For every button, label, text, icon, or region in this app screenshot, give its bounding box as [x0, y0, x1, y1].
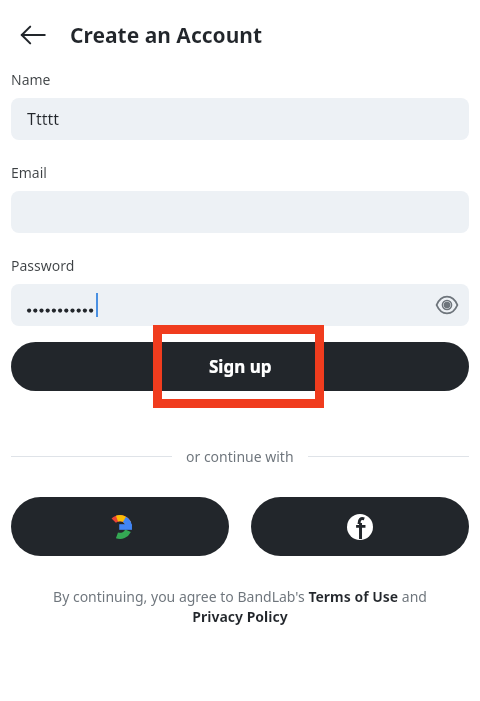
staticText: or continue with [186, 447, 294, 466]
staticText: Email [11, 163, 47, 182]
staticText: Sign up [209, 355, 272, 378]
button[interactable]: Show password [11, 284, 469, 326]
staticText: Password [11, 256, 75, 275]
button[interactable]: Show password [425, 284, 469, 326]
button[interactable]: Ttttt [11, 98, 469, 140]
staticText: Name [11, 70, 51, 89]
button[interactable]: Back [16, 18, 50, 52]
staticText: By continuing, you agree to BandLab's Te… [41, 587, 439, 627]
button[interactable]: Sign up [11, 342, 469, 391]
staticText: Ttttt [27, 108, 60, 130]
button[interactable]: Continue with Facebook [251, 497, 469, 556]
staticText: Create an Account [70, 21, 263, 50]
button[interactable]: Continue with Google [11, 497, 229, 556]
button[interactable]: By continuing, you agree to BandLab's Te… [41, 587, 439, 627]
